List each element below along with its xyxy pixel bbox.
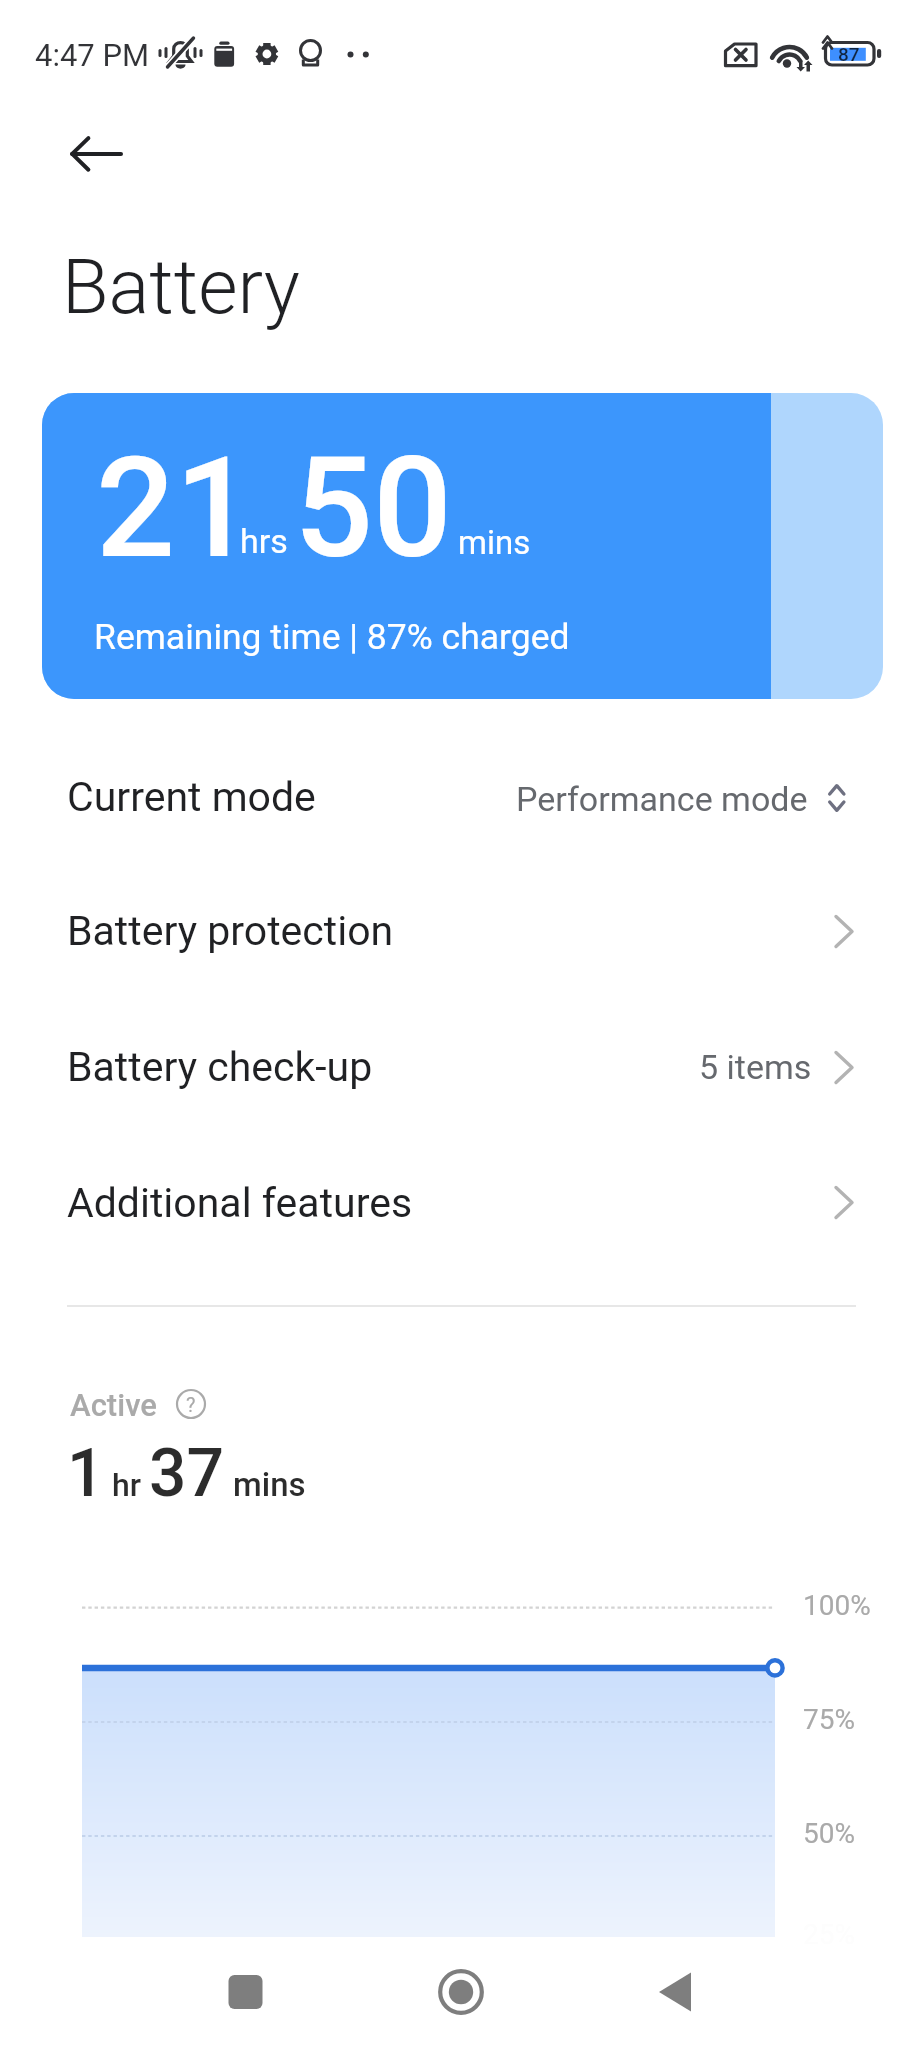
staticText: 100%	[803, 1589, 871, 1622]
staticText: 21	[96, 427, 255, 590]
button[interactable]: Recent apps	[200, 1947, 290, 2037]
staticText: hrs	[240, 521, 288, 561]
staticText: 50%	[803, 1817, 855, 1850]
staticText: 87	[838, 43, 860, 65]
staticText: 37	[149, 1435, 225, 1512]
staticText: hr	[112, 1466, 142, 1504]
staticText: 4:47 PM	[35, 37, 150, 73]
staticText: Battery check-up	[67, 1043, 373, 1091]
button[interactable]: Back	[42, 126, 100, 184]
staticText: 5 items	[699, 1047, 812, 1087]
staticText: Current mode	[67, 773, 316, 821]
button[interactable]	[0, 988, 922, 1123]
staticText: Additional features	[67, 1179, 413, 1227]
button[interactable]: About active time	[176, 1389, 206, 1419]
button[interactable]	[0, 852, 922, 987]
staticText: Battery protection	[67, 907, 394, 955]
button[interactable]: Home	[416, 1947, 506, 2037]
staticText: Active	[70, 1387, 157, 1423]
button[interactable]: Back	[630, 1947, 720, 2037]
staticText: Performance mode	[516, 779, 808, 819]
staticText: 50	[294, 427, 453, 590]
button[interactable]	[42, 393, 883, 699]
staticText: Remaining time | 87% charged	[94, 616, 570, 658]
button[interactable]	[0, 1123, 922, 1258]
staticText: mins	[458, 523, 531, 562]
button[interactable]	[0, 717, 922, 852]
staticText: ?	[186, 1393, 196, 1416]
staticText: 75%	[803, 1703, 855, 1736]
staticText: mins	[233, 1465, 306, 1504]
staticText: 1	[67, 1435, 105, 1512]
staticText: Battery	[62, 242, 300, 331]
